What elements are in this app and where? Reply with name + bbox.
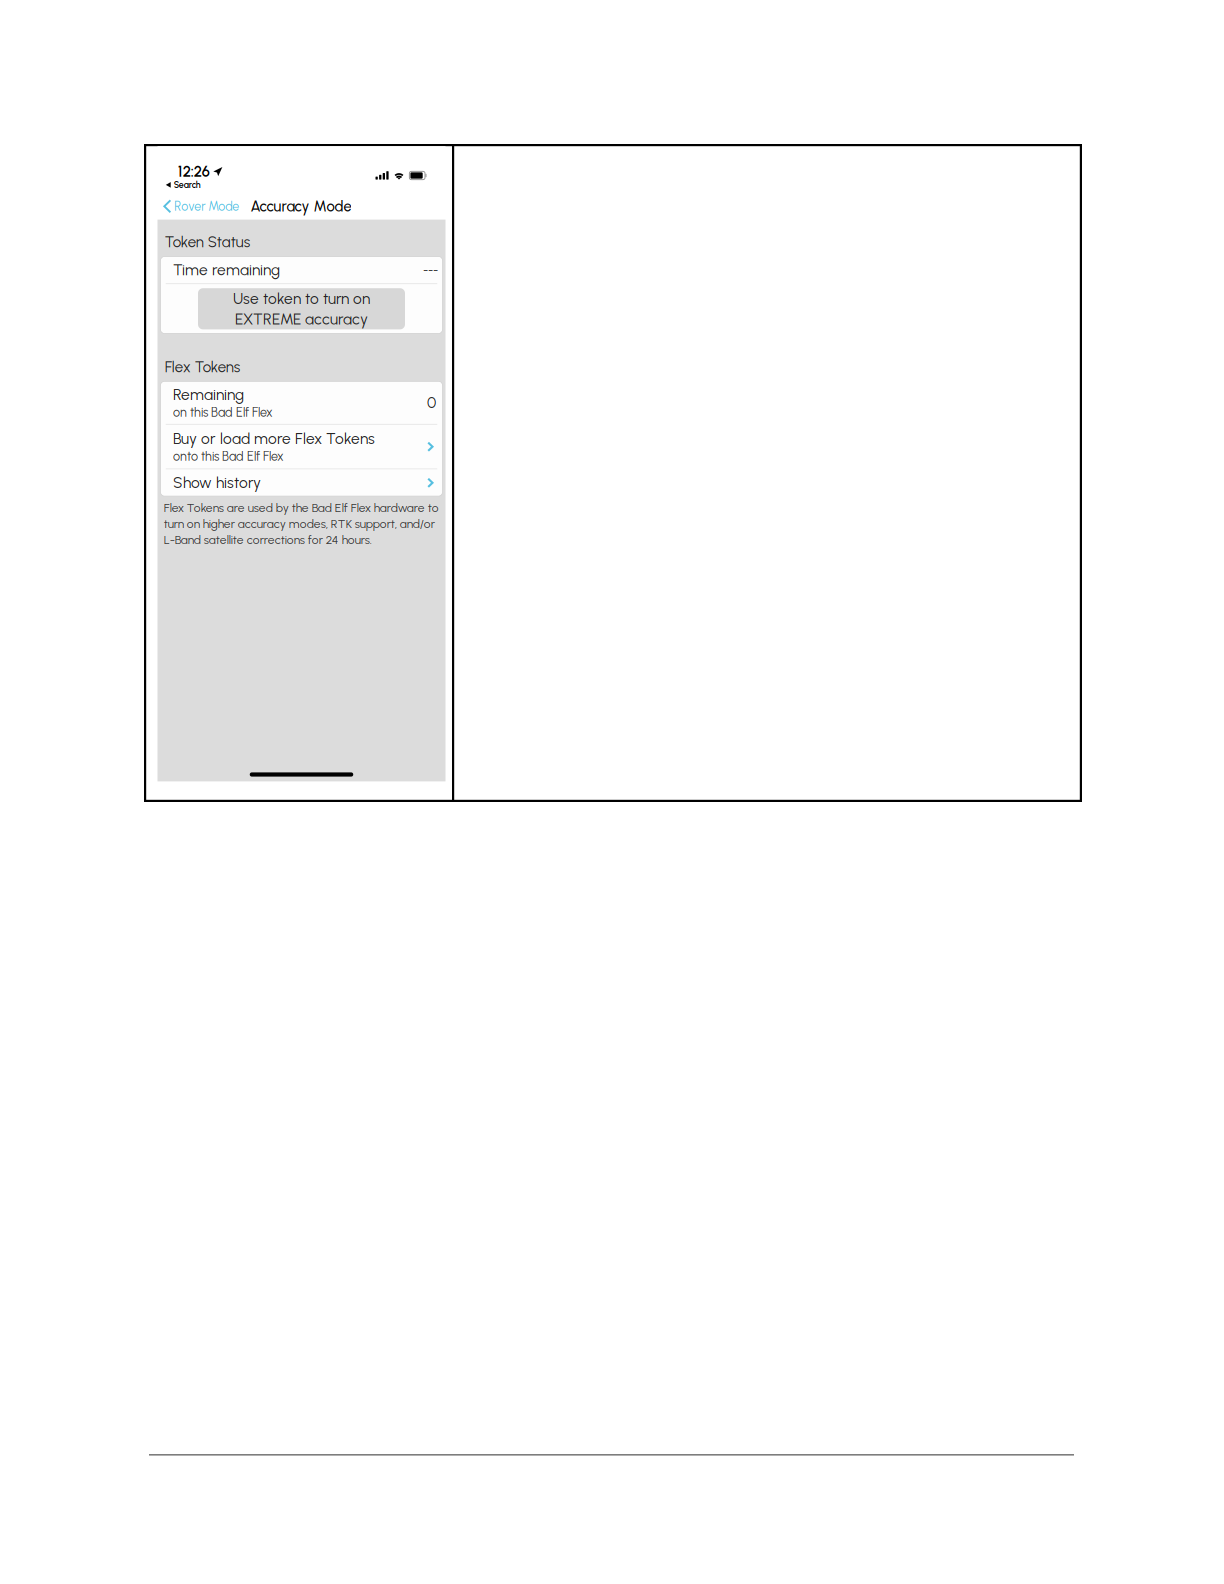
staticText: Buy or load more Flex Tokens <box>173 429 375 448</box>
staticText: L-Band satellite corrections for 24 hour… <box>164 533 372 547</box>
staticText: Remaining <box>173 385 244 404</box>
staticText: onto this Bad Elf Flex <box>173 449 284 464</box>
staticText: 12:26 <box>178 163 210 180</box>
staticText: 0 <box>427 393 436 412</box>
button[interactable]: Show history <box>160 469 442 496</box>
button[interactable]: Buy or load more Flex Tokens onto this B… <box>160 425 442 468</box>
staticText: Time remaining <box>173 261 280 279</box>
button[interactable]: Rover Mode <box>157 193 241 220</box>
staticText: Flex Tokens are used by the Bad Elf Flex… <box>164 501 439 515</box>
button[interactable]: Use token to turn on EXTREME accuracy <box>198 288 405 329</box>
staticText: Rover Mode <box>174 199 239 214</box>
staticText: Use token to turn on <box>233 289 370 308</box>
staticText: Accuracy Mode <box>250 198 351 215</box>
staticText: --- <box>423 263 438 277</box>
staticText: Show history <box>173 473 261 492</box>
staticText: turn on higher accuracy modes, RTK suppo… <box>164 517 435 531</box>
staticText: Flex Tokens <box>165 358 240 376</box>
staticText: on this Bad Elf Flex <box>173 405 273 420</box>
staticText: EXTREME accuracy <box>235 310 368 328</box>
staticText: Token Status <box>165 233 250 251</box>
staticText: Search <box>174 180 201 190</box>
